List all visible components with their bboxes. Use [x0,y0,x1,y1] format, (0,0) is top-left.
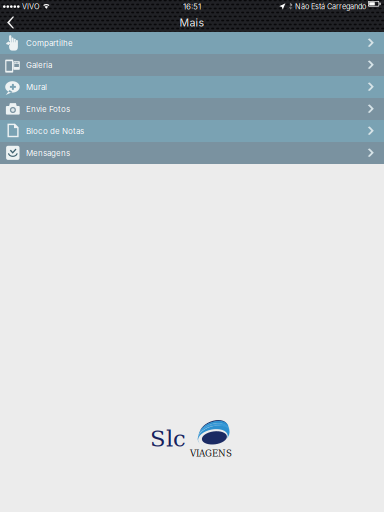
button[interactable]: Compartilhe [0,32,384,54]
staticText: Bloco de Notas [26,126,84,136]
staticText: Envie Fotos [26,104,70,114]
button[interactable]: Back [0,13,26,32]
staticText: VIAGENS [190,448,232,459]
button[interactable]: Galeria [0,54,384,76]
staticText: Mural [26,82,47,92]
staticText: Galeria [26,60,52,70]
staticText: Mensagens [26,148,70,158]
button[interactable]: Mensagens [0,142,384,164]
staticText: Mais [179,16,204,29]
staticText: Slc [150,425,186,452]
staticText: 16:51 [183,2,201,11]
staticText: Compartilhe [26,38,73,48]
staticText: VIVO [22,2,40,11]
button[interactable]: Mural [0,76,384,98]
button[interactable]: Bloco de Notas [0,120,384,142]
button[interactable]: Envie Fotos [0,98,384,120]
staticText: Não Está Carregando [295,2,366,11]
